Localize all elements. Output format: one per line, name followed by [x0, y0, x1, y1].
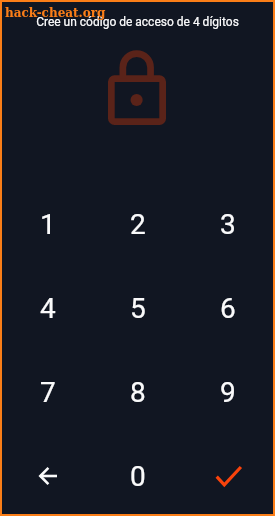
staticText: 2	[130, 208, 146, 241]
staticText: 5	[130, 292, 146, 325]
button[interactable]: 6	[183, 278, 273, 338]
button[interactable]: 4	[2, 278, 93, 338]
button[interactable]: 5	[93, 278, 183, 338]
staticText: 8	[130, 376, 146, 409]
staticText: 0	[130, 460, 146, 493]
button[interactable]: 2	[93, 194, 183, 254]
staticText: 9	[220, 376, 236, 409]
button[interactable]: 8	[93, 362, 183, 422]
button[interactable]: 0	[93, 446, 183, 506]
button[interactable]: 3	[183, 194, 273, 254]
staticText: hack-cheat.org	[5, 6, 106, 20]
staticText: 1	[40, 208, 56, 241]
button[interactable]: Confirmar	[183, 446, 273, 506]
staticText: 3	[220, 208, 236, 241]
button[interactable]: 1	[2, 194, 93, 254]
staticText: 7	[40, 376, 56, 409]
staticText: 6	[220, 292, 236, 325]
staticText: 4	[40, 292, 56, 325]
button[interactable]: 9	[183, 362, 273, 422]
staticText: Cree un código de acceso de 4 dígitos	[36, 15, 239, 29]
button[interactable]: 7	[2, 362, 93, 422]
button[interactable]: Borrar	[2, 446, 93, 506]
